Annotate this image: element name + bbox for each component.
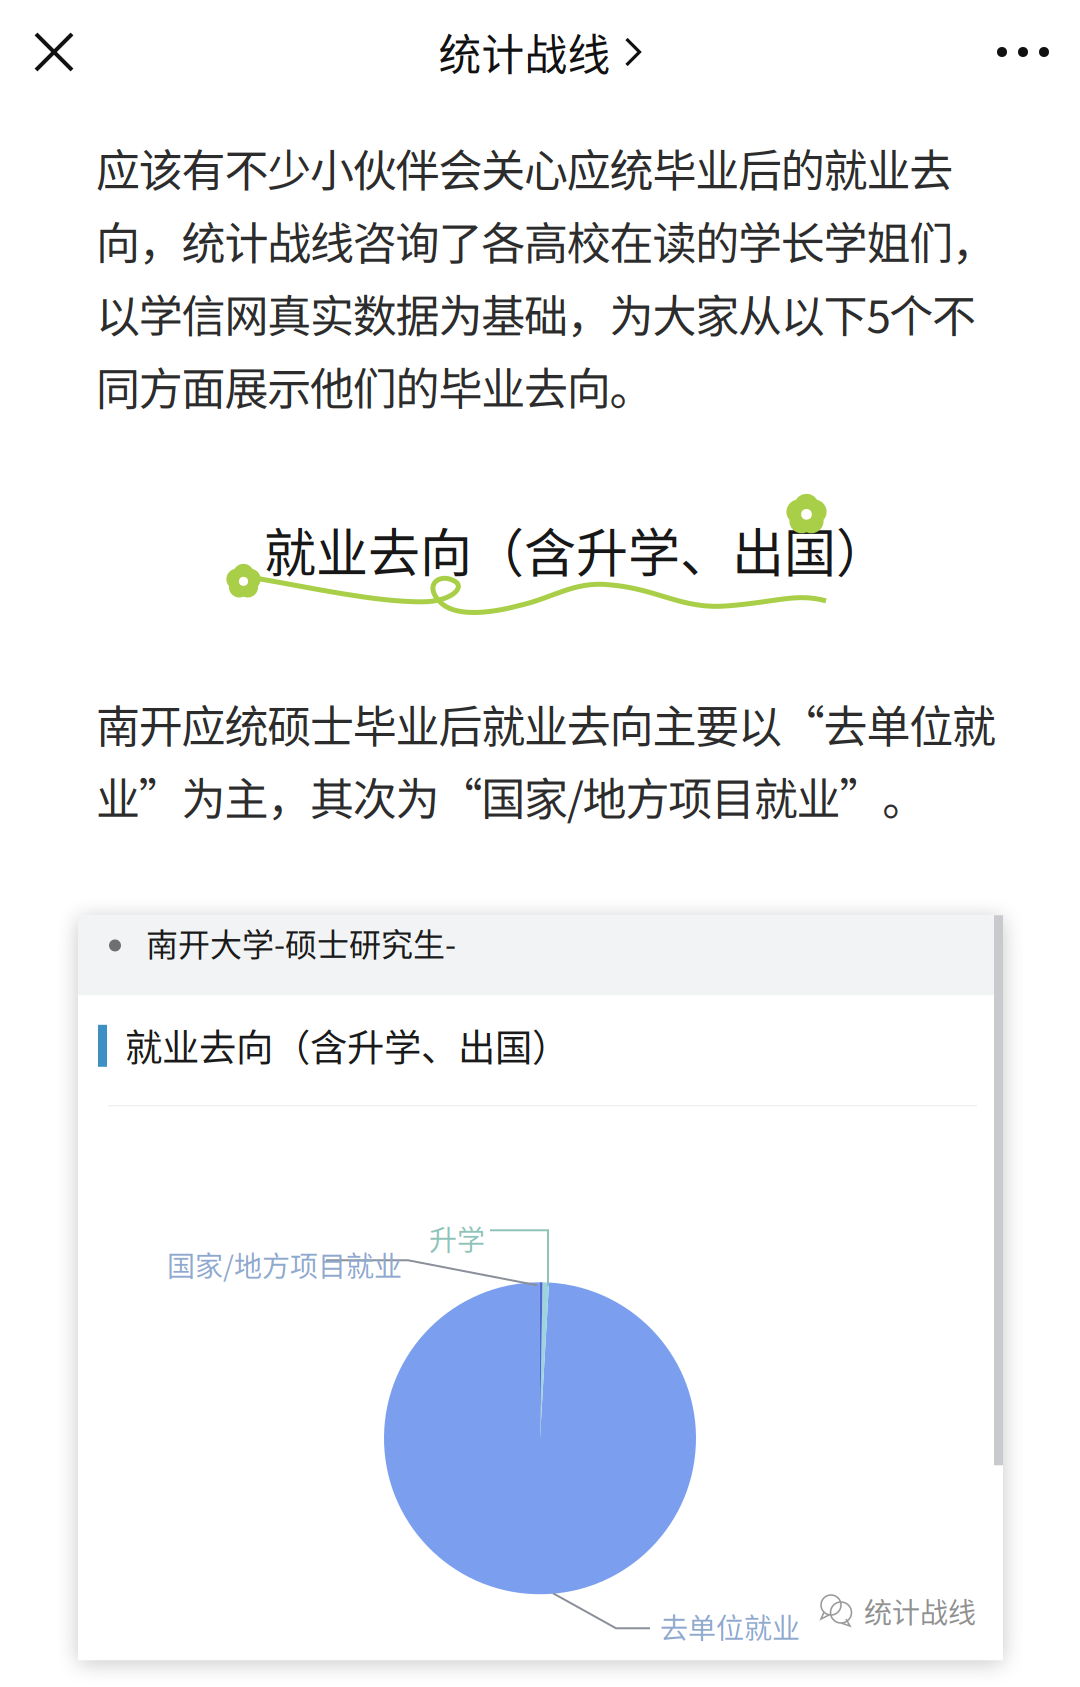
staticText: 就业去向（含升学、出国） [125,1018,569,1072]
button[interactable]: Close [0,2,100,102]
staticText: 国家/地方项目就业 [167,1244,402,1285]
staticText: 应该有不少小伙伴会关心应统毕业后的就业去向，统计战线咨询了各高校在读的学长学姐们… [96,136,996,418]
staticText: 南开应统硕士毕业后就业去向主要以“去单位就业”为主，其次为“国家/地方项目就业”… [96,692,996,828]
staticText: 就业去向（含升学、出国） [264,512,888,587]
staticText: 去单位就业 [660,1606,800,1647]
button[interactable]: More [970,2,1080,102]
staticText: 统计战线 [864,1591,976,1631]
staticText: 升学 [429,1218,485,1259]
staticText: 统计战线 [438,21,610,83]
staticText: 南开大学-硕士研究生- [146,919,456,966]
